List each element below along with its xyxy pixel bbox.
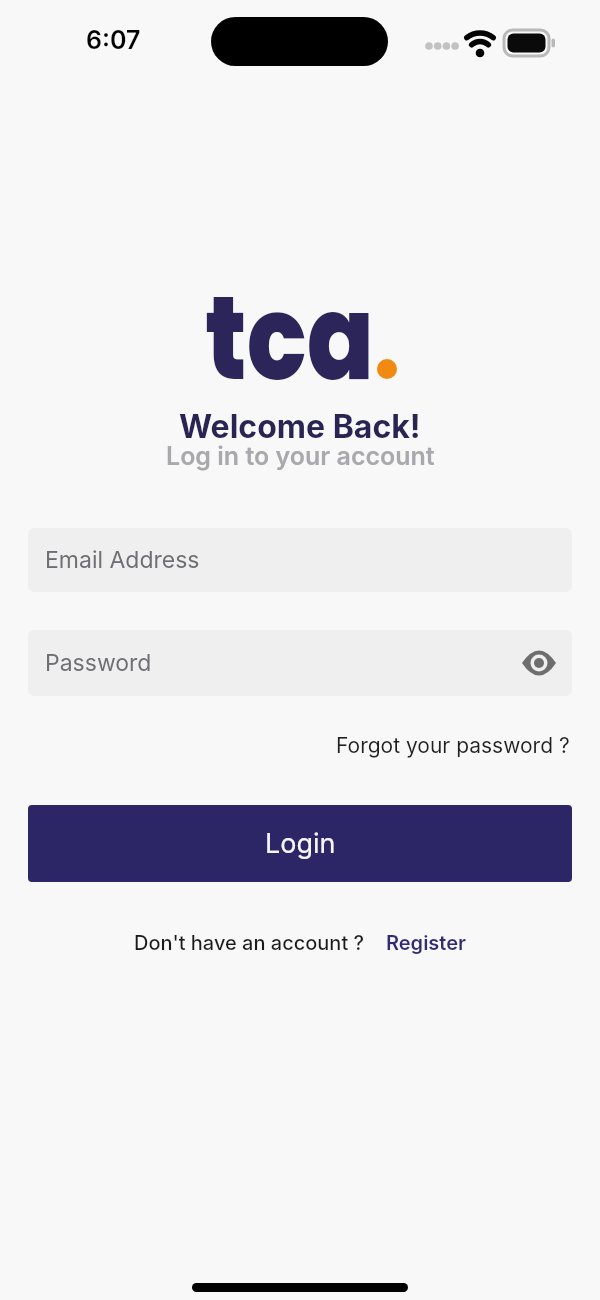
staticText: Welcome Back! [179, 407, 421, 446]
button[interactable]: Email Address [28, 528, 572, 592]
staticText: Email Address [45, 546, 200, 574]
button[interactable] [522, 651, 556, 675]
staticText: Password [45, 649, 152, 677]
button[interactable]: Password [28, 630, 572, 696]
staticText: Log in to your account [166, 441, 435, 471]
staticText: Don't have an account ? [134, 931, 365, 955]
staticText: Login [265, 827, 336, 860]
button[interactable]: Login [28, 805, 572, 882]
staticText: tca [205, 256, 375, 398]
button[interactable]: Forgot your password ? [336, 733, 570, 758]
button[interactable]: Register [386, 931, 466, 955]
staticText: 6:07 [86, 25, 141, 55]
